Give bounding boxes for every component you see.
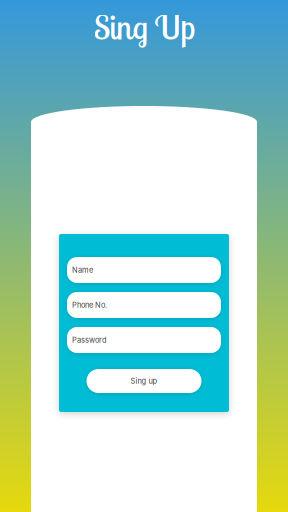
button[interactable]: Phone No. bbox=[67, 292, 221, 318]
staticText: Phone No. bbox=[72, 300, 107, 309]
staticText: Sing up bbox=[130, 376, 157, 385]
button[interactable]: Sing up bbox=[86, 369, 201, 393]
button[interactable]: Password bbox=[67, 327, 221, 353]
staticText: Name bbox=[72, 265, 93, 274]
staticText: Sing Up bbox=[93, 6, 194, 48]
button[interactable]: Name bbox=[67, 257, 221, 283]
staticText: Password bbox=[72, 335, 107, 344]
